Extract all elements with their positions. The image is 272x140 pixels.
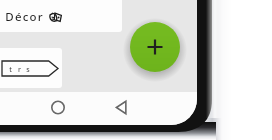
staticText: umn Décor <box>0 9 44 25</box>
staticText: t <box>9 65 12 73</box>
button[interactable]: umn Décor <box>0 0 122 32</box>
button[interactable]: t <box>0 48 62 88</box>
staticText: r <box>18 65 21 73</box>
button[interactable]: Add <box>130 22 180 72</box>
button[interactable]: Back <box>107 92 137 125</box>
staticText: s <box>26 65 30 73</box>
button[interactable]: Home <box>43 92 73 125</box>
